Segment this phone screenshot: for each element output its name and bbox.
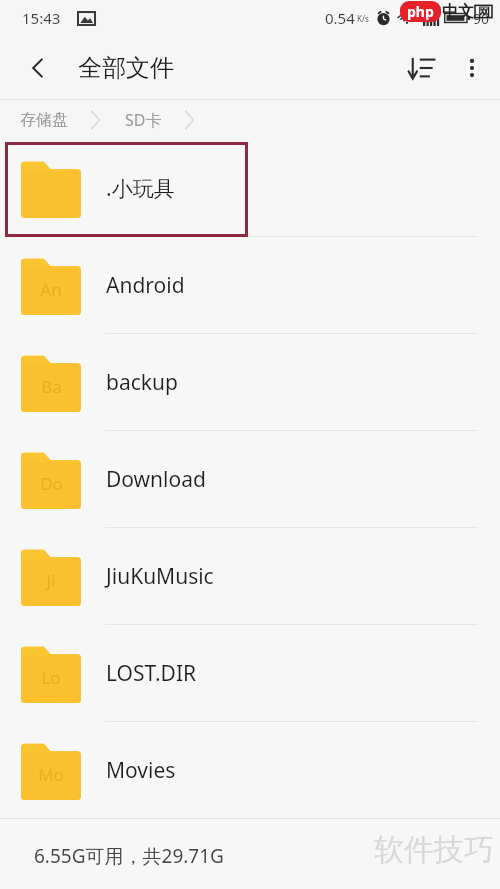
button[interactable]: Back xyxy=(14,44,62,92)
button[interactable]: Do xyxy=(0,431,500,528)
staticText: JiuKuMusic xyxy=(106,562,214,591)
staticText: Android xyxy=(106,271,185,300)
staticText: 90 xyxy=(473,9,490,28)
staticText: backup xyxy=(106,368,178,397)
staticText: Movies xyxy=(106,756,176,785)
button[interactable]: .小玩具 xyxy=(0,140,500,237)
button[interactable]: Mo xyxy=(0,722,500,819)
staticText: php xyxy=(407,2,434,21)
button[interactable]: More options xyxy=(448,44,496,92)
staticText: Download xyxy=(106,465,206,494)
staticText: Ji xyxy=(46,569,56,592)
staticText: Do xyxy=(40,472,63,495)
button[interactable]: An xyxy=(0,237,500,334)
button[interactable]: Sort xyxy=(396,42,448,94)
button[interactable]: Ji xyxy=(0,528,500,625)
staticText: SD卡 xyxy=(125,109,162,131)
staticText: An xyxy=(40,278,62,301)
staticText: K/s xyxy=(357,13,369,24)
staticText: .小玩具 xyxy=(106,174,175,203)
staticText: 软件技巧 xyxy=(374,831,494,869)
staticText: 网 xyxy=(478,4,490,19)
staticText: 15:43 xyxy=(22,8,61,28)
staticText: Lo xyxy=(41,666,61,689)
staticText: Ba xyxy=(41,375,62,398)
staticText: LOST.DIR xyxy=(106,659,197,688)
staticText: 中文 xyxy=(442,2,474,22)
button[interactable]: Ba xyxy=(0,334,500,431)
staticText: 6.55G可用，共29.71G xyxy=(34,843,224,869)
staticText: 全部文件 xyxy=(78,53,174,83)
button[interactable]: 存储盘 xyxy=(18,106,70,134)
staticText: Mo xyxy=(38,763,64,786)
button[interactable]: Lo xyxy=(0,625,500,722)
staticText: 存储盘 xyxy=(20,110,68,130)
staticText: 0.54 xyxy=(325,8,355,28)
button[interactable]: SD卡 xyxy=(123,105,164,135)
